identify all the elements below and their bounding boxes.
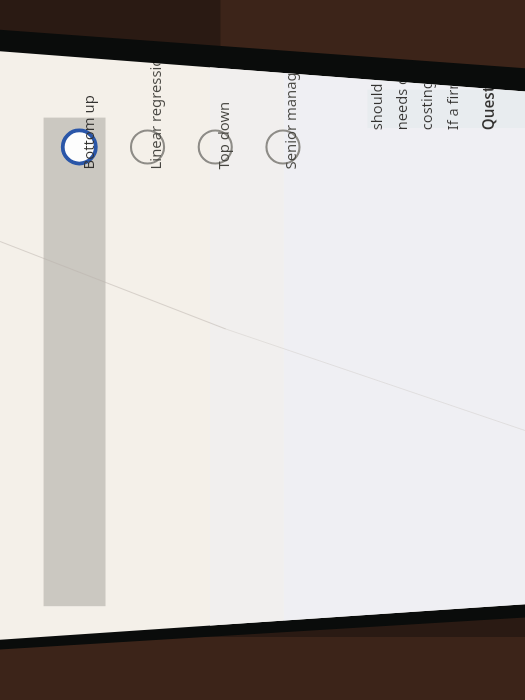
button[interactable]: Quiz question on phone screen bbox=[0, 0, 525, 700]
